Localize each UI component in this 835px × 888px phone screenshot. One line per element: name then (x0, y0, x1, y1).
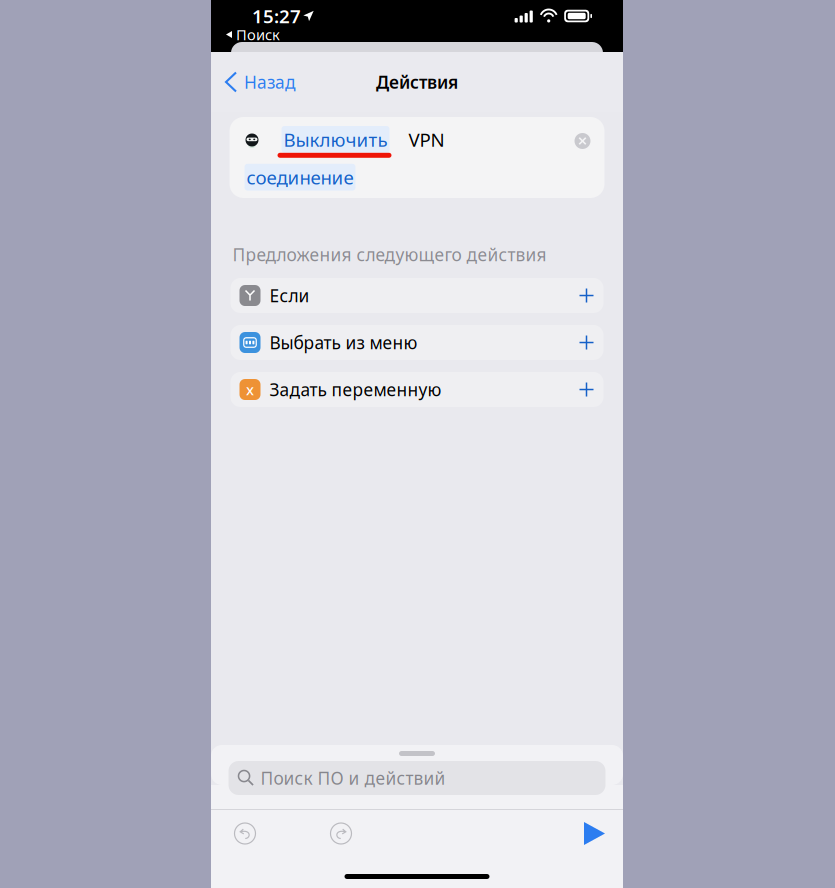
staticText: соединение (246, 165, 353, 190)
staticText: Выключить (283, 127, 387, 152)
staticText: VPN (408, 127, 444, 152)
staticText: 15:27 (252, 4, 301, 28)
button[interactable]: x (230, 372, 603, 407)
staticText: Предложения следующего действия (232, 243, 546, 266)
button[interactable]: Выбрать из меню (230, 325, 603, 360)
button[interactable]: Поиск ПО и действий (228, 761, 605, 795)
staticText: Поиск (236, 25, 280, 44)
staticText: Выбрать из меню (269, 331, 417, 354)
button[interactable]: Удалить действие (568, 127, 596, 155)
staticText: Если (269, 284, 309, 307)
button[interactable]: Повторить (325, 817, 357, 849)
button[interactable]: Если (230, 278, 603, 313)
button[interactable]: Отменить (229, 817, 261, 849)
staticText: Назад (244, 70, 296, 93)
button[interactable]: Назад (222, 61, 300, 102)
staticText: x (246, 380, 254, 399)
staticText: Поиск ПО и действий (260, 766, 445, 789)
staticText: Задать переменную (269, 378, 441, 401)
button[interactable]: Запустить (579, 817, 610, 850)
staticText: Действия (376, 70, 458, 93)
